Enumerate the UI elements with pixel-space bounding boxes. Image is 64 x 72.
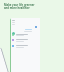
- button[interactable]: [10, 18, 40, 72]
- staticText: Make your life greener: [4, 3, 35, 7]
- staticText: and more healthier: [4, 6, 30, 10]
